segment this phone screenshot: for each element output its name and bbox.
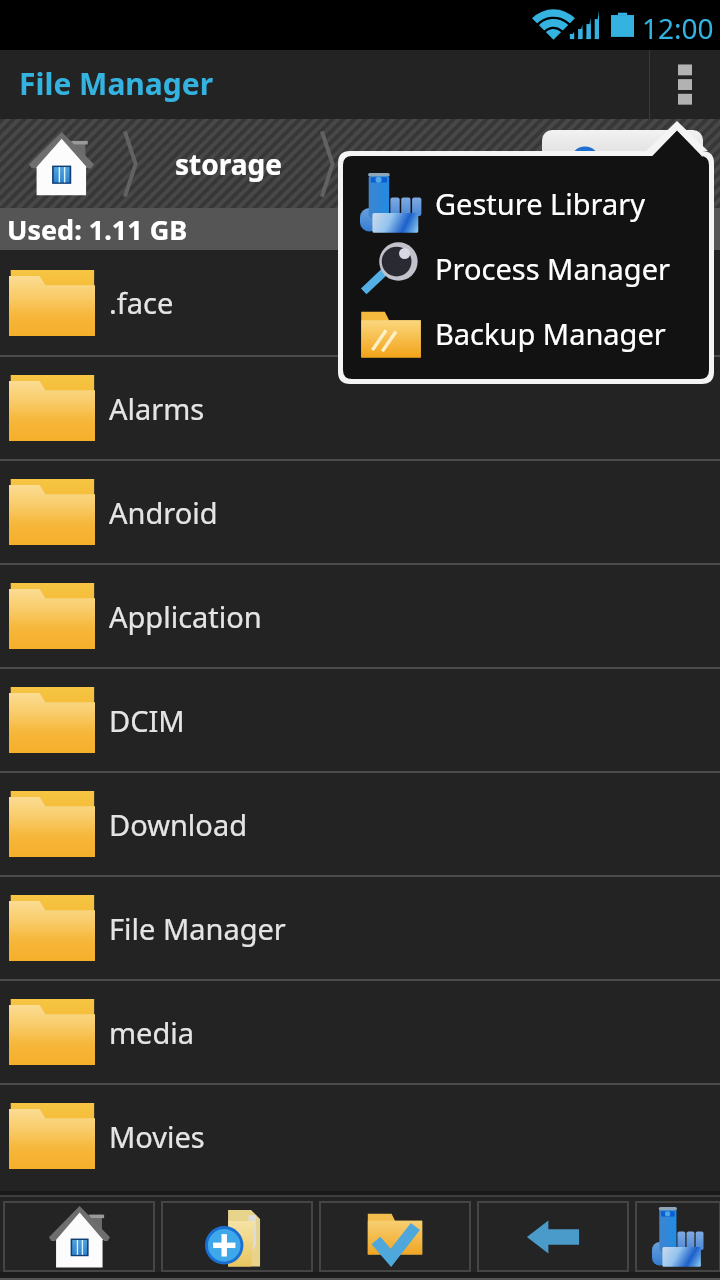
button[interactable]: Process Manager bbox=[344, 236, 708, 301]
button[interactable]: Download bbox=[0, 773, 720, 875]
staticText: Movies bbox=[109, 1117, 205, 1156]
staticText: File Manager bbox=[109, 909, 286, 948]
staticText: Process Manager bbox=[435, 249, 671, 288]
button[interactable]: Gesture library bbox=[636, 1202, 720, 1271]
staticText: 12:00 bbox=[642, 9, 714, 47]
staticText: Used: 1.11 GB bbox=[7, 211, 188, 248]
button[interactable]: Application bbox=[0, 565, 720, 667]
button[interactable]: DCIM bbox=[0, 669, 720, 771]
staticText: .face bbox=[109, 283, 174, 322]
button[interactable]: .face bbox=[0, 250, 720, 355]
button[interactable]: Select bbox=[320, 1202, 470, 1271]
button[interactable]: New folder bbox=[162, 1202, 312, 1271]
staticText: Gesture Library bbox=[435, 184, 645, 223]
staticText: Android bbox=[109, 493, 218, 532]
button[interactable]: Back bbox=[478, 1202, 628, 1271]
staticText: File Manager bbox=[19, 63, 214, 104]
button[interactable]: storage bbox=[175, 145, 282, 183]
staticText: Backup Manager bbox=[435, 314, 666, 353]
button[interactable]: Movies bbox=[0, 1085, 720, 1187]
button[interactable]: Alarms bbox=[0, 357, 720, 459]
button[interactable]: sdcard0 bbox=[375, 145, 484, 183]
button[interactable]: File Manager bbox=[0, 877, 720, 979]
button[interactable]: Home bbox=[4, 1202, 154, 1271]
staticText: Application bbox=[109, 597, 262, 636]
button[interactable]: Gesture Library bbox=[344, 170, 708, 236]
button[interactable]: Home bbox=[0, 119, 122, 208]
button[interactable]: Android bbox=[0, 461, 720, 563]
button[interactable]: media bbox=[0, 981, 720, 1083]
staticText: media bbox=[109, 1013, 195, 1052]
button[interactable]: Backup Manager bbox=[344, 301, 708, 366]
staticText: Download bbox=[109, 805, 247, 844]
button[interactable]: More options bbox=[650, 50, 720, 119]
staticText: DCIM bbox=[109, 701, 185, 740]
button[interactable]: Search bbox=[542, 130, 703, 192]
staticText: Alarms bbox=[109, 389, 205, 428]
